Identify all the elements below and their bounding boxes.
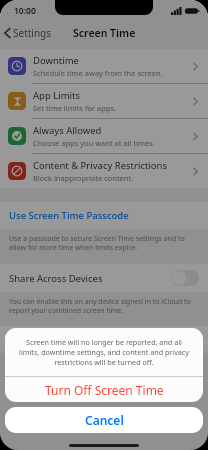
staticText: Share Across Devices: [9, 272, 171, 285]
staticText: Use Screen Time Passcode: [9, 209, 129, 222]
staticText: Screen Time: [73, 26, 136, 40]
button[interactable]: App Limits: [0, 84, 208, 118]
staticText: Downtime: [33, 54, 79, 67]
staticText: You can enable this on any device signed…: [9, 297, 196, 315]
staticText: 10:00: [14, 5, 36, 17]
button[interactable]: Downtime: [0, 49, 208, 83]
staticText: Schedule time away from the screen.: [33, 68, 163, 78]
staticText: Block inappropriate content.: [33, 173, 134, 183]
button[interactable]: Back: [0, 24, 58, 42]
staticText: Cancel: [85, 412, 124, 428]
button[interactable]: Share Across Devices toggle: [171, 270, 199, 286]
staticText: Settings: [13, 26, 52, 40]
other: Back: [4, 27, 11, 39]
staticText: Content & Privacy Restrictions: [33, 159, 167, 172]
button[interactable]: Turn Off Screen Time: [5, 377, 203, 402]
staticText: Screen time will no longer be reported, …: [17, 337, 191, 367]
staticText: Use a passcode to secure Screen Time set…: [9, 234, 194, 252]
button[interactable]: Content & Privacy Restrictions: [0, 154, 208, 188]
staticText: Turn Off Screen Time: [45, 382, 164, 398]
button[interactable]: Always Allowed: [0, 119, 208, 153]
staticText: Set time limits for apps.: [33, 103, 117, 113]
button[interactable]: Cancel: [5, 407, 203, 433]
staticText: App Limits: [33, 89, 80, 102]
staticText: Turn Off Screen Time: [9, 333, 105, 346]
button[interactable]: Use Screen Time Passcode: [0, 202, 208, 229]
button[interactable]: Share Across Devices: [0, 264, 208, 292]
staticText: Always Allowed: [33, 124, 102, 137]
button[interactable]: Turn Off Screen Time: [0, 326, 208, 353]
staticText: Choose apps you want at all times.: [33, 138, 155, 148]
